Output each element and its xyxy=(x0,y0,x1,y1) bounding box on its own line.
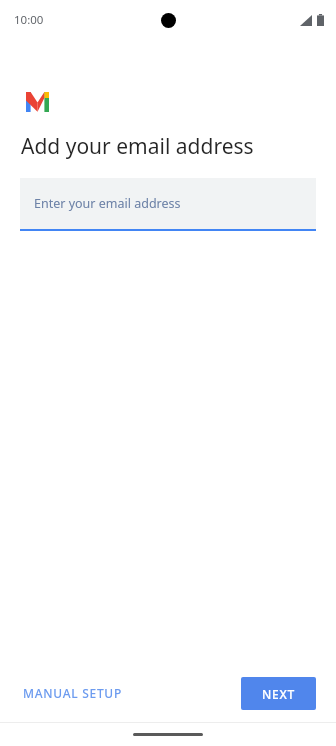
button[interactable]: NEXT xyxy=(241,677,316,710)
staticText: 10:00 xyxy=(14,12,44,28)
staticText: NEXT xyxy=(262,686,295,702)
staticText: Add your email address xyxy=(21,132,254,161)
staticText: Enter your email address xyxy=(34,195,181,212)
button[interactable]: Enter your email address xyxy=(20,178,316,231)
staticText: MANUAL SETUP xyxy=(23,685,122,701)
button[interactable]: MANUAL SETUP xyxy=(20,677,125,709)
